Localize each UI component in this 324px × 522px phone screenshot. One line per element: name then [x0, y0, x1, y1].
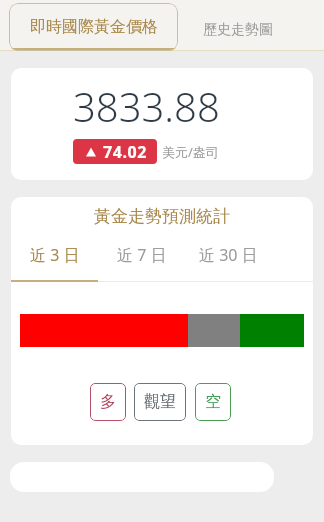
staticText: 近 7 日 — [117, 244, 167, 266]
button[interactable]: 即時國際黃金價格 — [9, 3, 178, 51]
staticText: 黃金走勢預測統計 — [11, 206, 313, 227]
button[interactable]: 74.02 — [86, 139, 148, 164]
button[interactable]: 近 3 日 — [11, 236, 98, 282]
staticText: 即時國際黃金價格 — [30, 17, 158, 37]
staticText: 74.02 — [103, 141, 148, 163]
staticText: 美元/盎司 — [162, 143, 219, 161]
staticText: 觀望 — [144, 392, 176, 412]
button[interactable]: 空 — [205, 383, 221, 421]
staticText: 3833.88 — [73, 79, 220, 133]
staticText: 多 — [100, 392, 116, 412]
button[interactable]: 近 7 日 — [98, 236, 185, 282]
staticText: 近 3 日 — [30, 244, 80, 266]
button[interactable]: 觀望 — [144, 383, 176, 421]
button[interactable]: 多 — [100, 383, 116, 421]
staticText: 歷史走勢圖 — [203, 21, 273, 39]
button[interactable]: 歷史走勢圖 — [178, 8, 298, 51]
button[interactable]: 近 30 日 — [185, 236, 272, 282]
staticText: 空 — [205, 392, 221, 412]
staticText: 近 30 日 — [199, 244, 258, 266]
